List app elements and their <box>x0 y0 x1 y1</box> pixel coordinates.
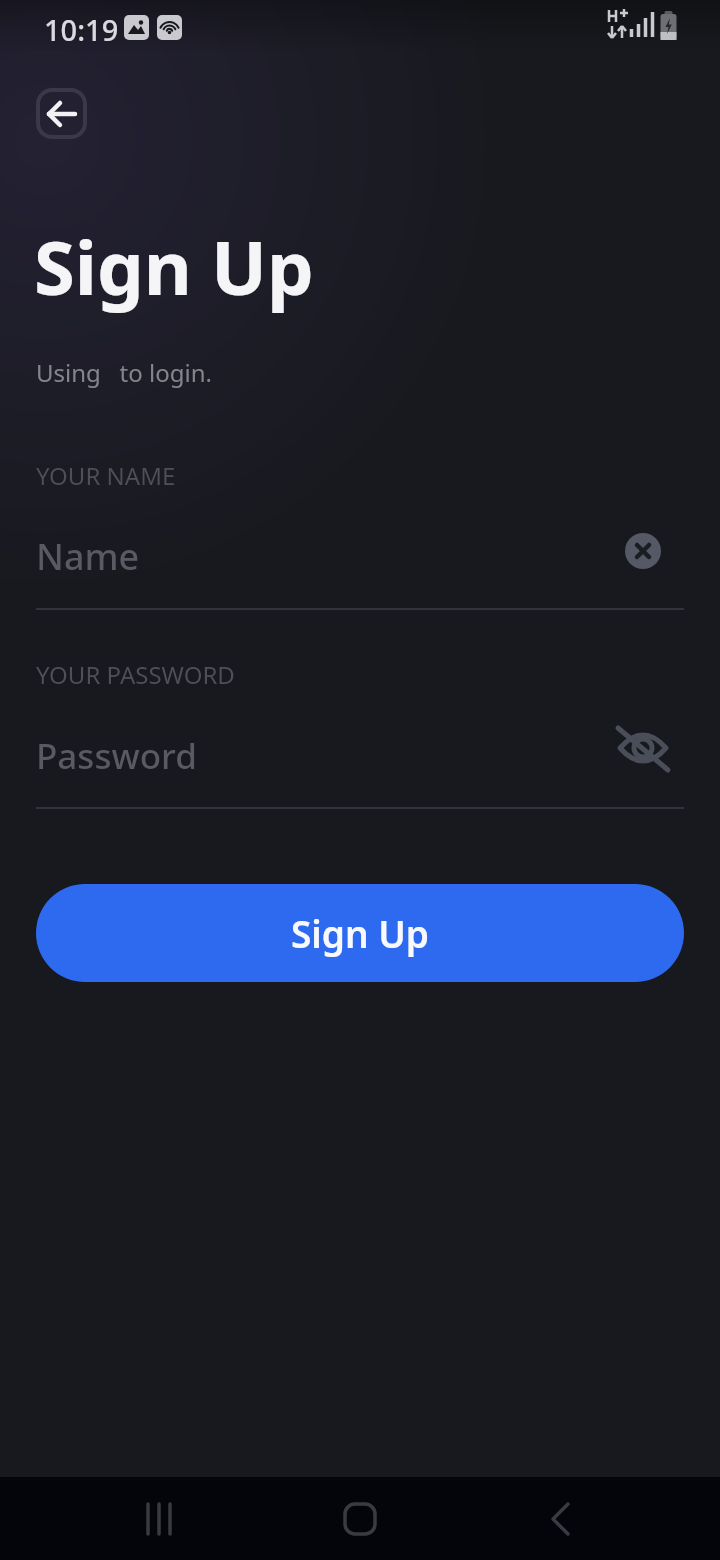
staticText: Sign Up <box>34 216 314 317</box>
staticText: Name <box>36 532 140 581</box>
button[interactable] <box>330 1489 390 1549</box>
button[interactable] <box>36 88 87 139</box>
button[interactable] <box>530 1489 590 1549</box>
staticText: YOUR PASSWORD <box>36 658 235 691</box>
staticText: 10:19 <box>44 10 119 49</box>
button[interactable] <box>625 533 661 569</box>
staticText: Using to login. <box>36 356 212 389</box>
button[interactable]: Sign Up <box>36 884 684 982</box>
button[interactable] <box>616 722 670 776</box>
staticText: YOUR NAME <box>36 459 176 492</box>
button[interactable] <box>130 1489 190 1549</box>
staticText: Sign Up <box>291 908 430 958</box>
staticText: Password <box>36 732 197 780</box>
